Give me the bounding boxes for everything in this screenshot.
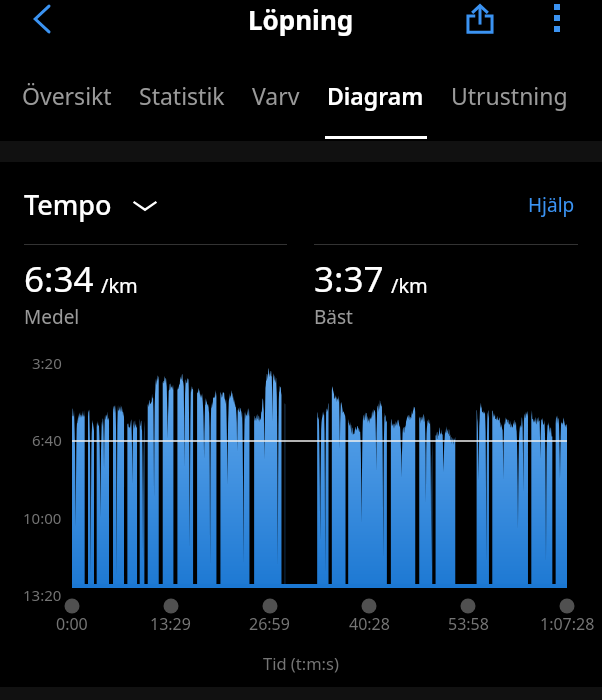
button[interactable]: Hjälp [528, 192, 575, 218]
button[interactable]: Statistik [139, 80, 225, 132]
staticText: 1:07:28 [540, 613, 595, 635]
staticText: Löpning [248, 2, 354, 37]
staticText: Tempo [24, 186, 112, 223]
staticText: /km [101, 272, 138, 299]
staticText: 53:58 [448, 613, 489, 635]
button[interactable]: Översikt [22, 80, 112, 132]
staticText: Tid (t:m:s) [263, 652, 339, 674]
staticText: Medel [24, 304, 80, 330]
staticText: Diagram [327, 80, 424, 111]
staticText: 3:37 [314, 255, 384, 303]
staticText: 3:20 [32, 353, 62, 373]
button[interactable]: Share [457, 0, 503, 42]
button[interactable]: Diagram [327, 80, 424, 132]
staticText: Utrustning [451, 80, 568, 111]
staticText: 13:29 [150, 613, 191, 635]
staticText: Statistik [139, 80, 225, 111]
button[interactable]: More options [534, 0, 580, 41]
staticText: 10:00 [23, 508, 62, 528]
staticText: 0:00 [56, 613, 88, 635]
staticText: 13:20 [23, 585, 62, 605]
staticText: Översikt [22, 80, 112, 111]
staticText: 26:59 [249, 613, 290, 635]
button[interactable]: Tempo [24, 186, 158, 223]
button[interactable]: Back [19, 0, 67, 43]
staticText: 6:40 [32, 430, 62, 450]
staticText: 6:34 [24, 255, 94, 303]
staticText: 40:28 [349, 613, 390, 635]
button[interactable]: Utrustning [451, 80, 568, 132]
staticText: Varv [252, 80, 300, 111]
staticText: /km [391, 272, 428, 299]
staticText: Bäst [314, 304, 353, 330]
button[interactable]: Varv [252, 80, 300, 132]
